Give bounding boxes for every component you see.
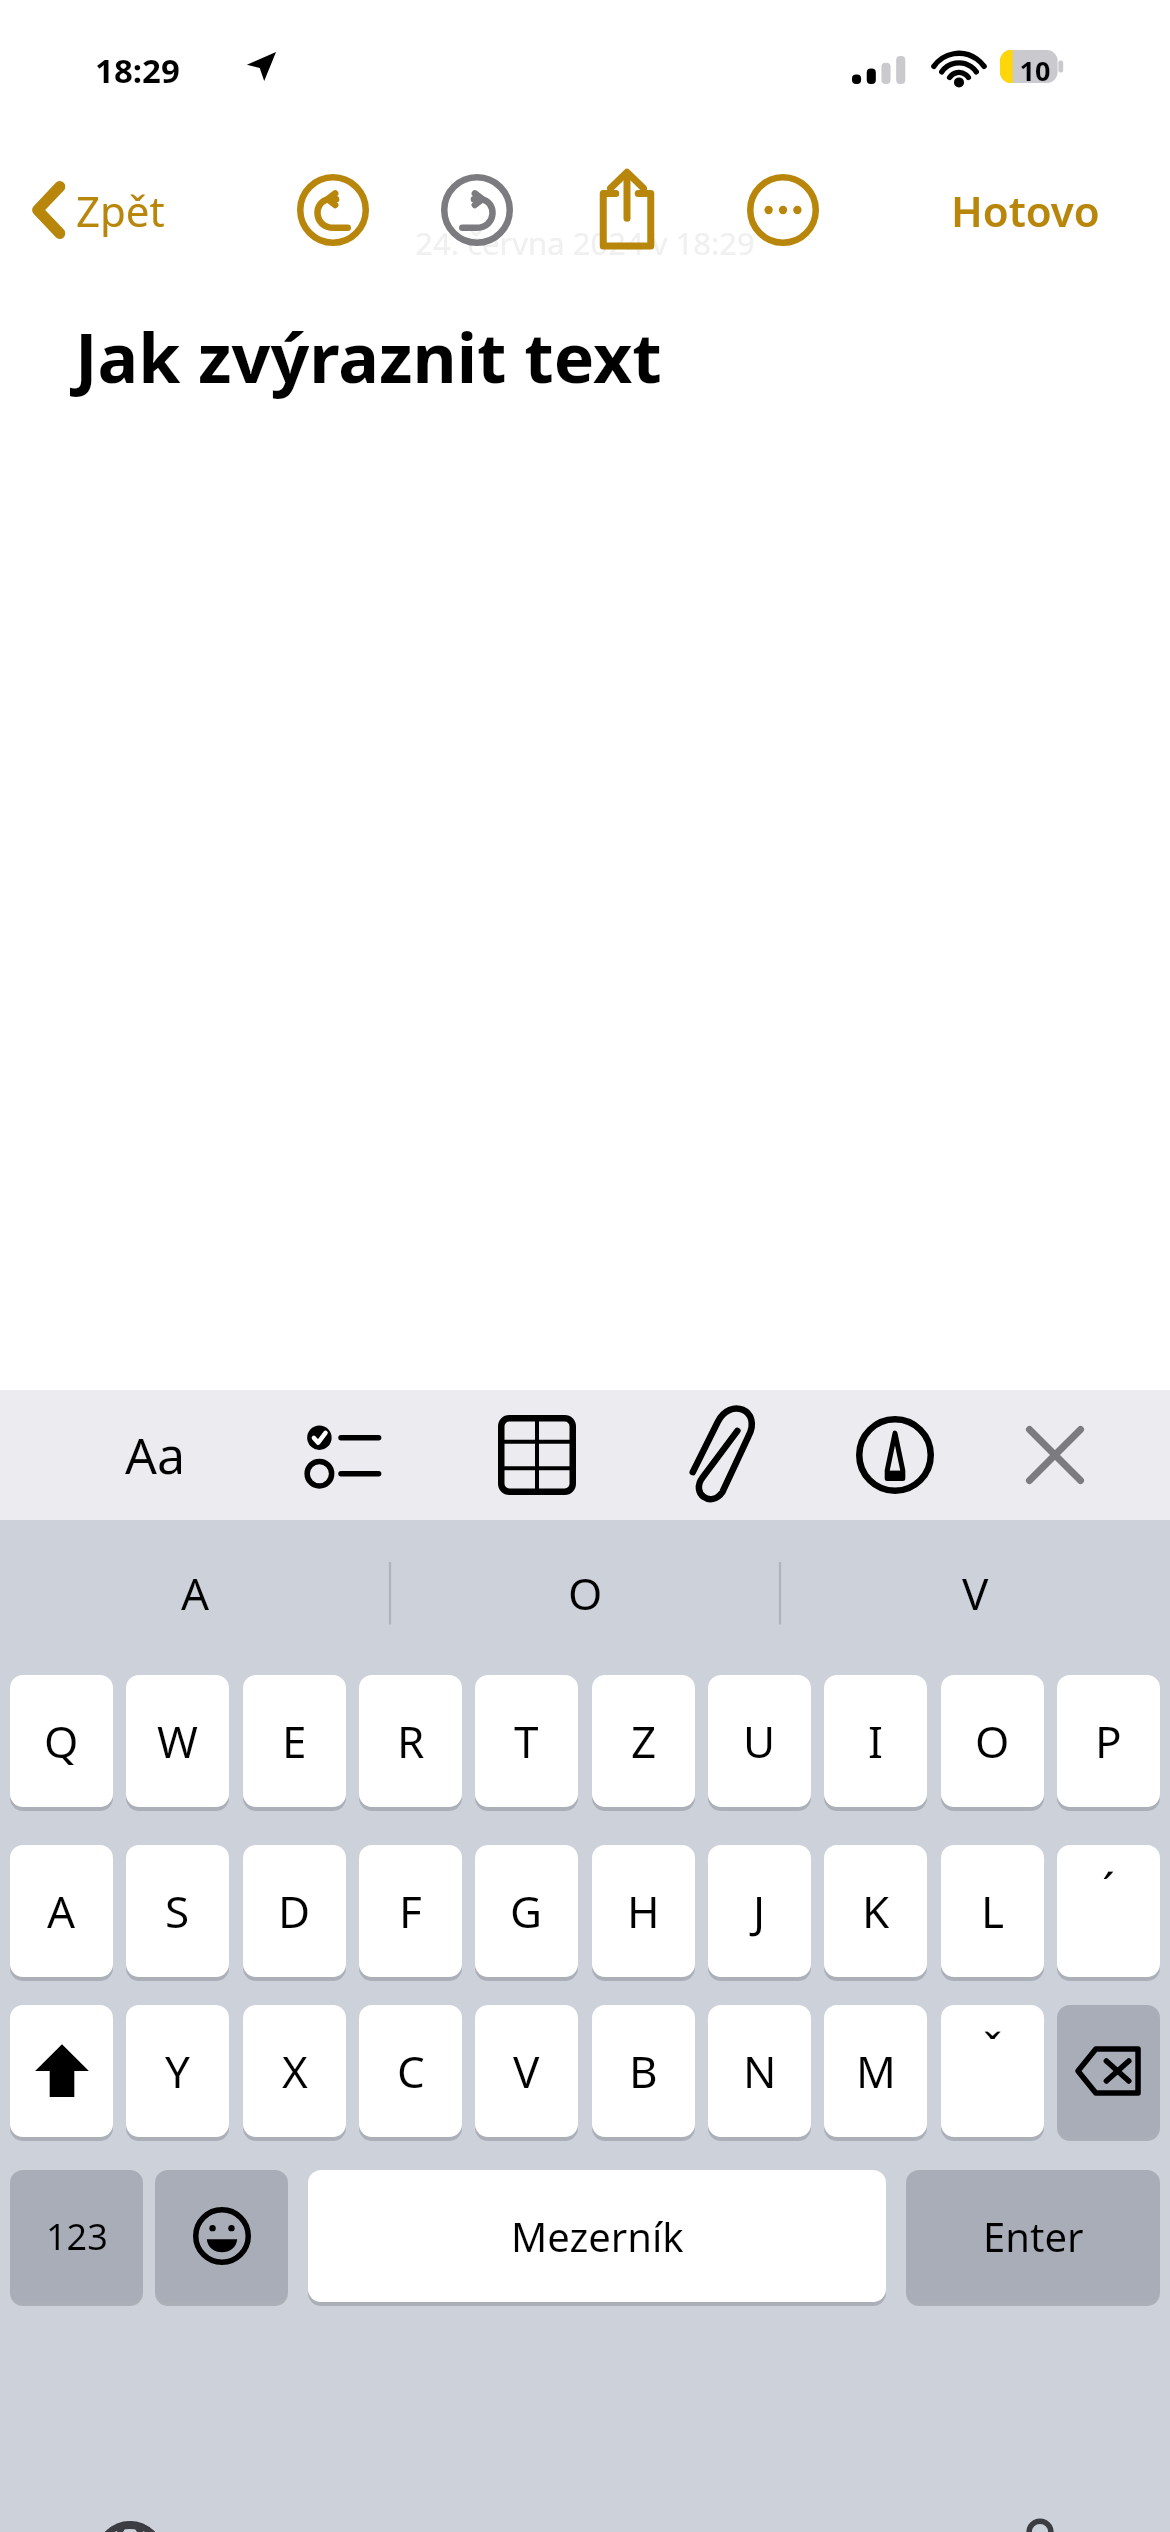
staticText: Z bbox=[631, 1711, 657, 1771]
button[interactable]: E bbox=[243, 1675, 346, 1807]
button[interactable]: M bbox=[824, 2005, 927, 2137]
button[interactable]: Shift bbox=[10, 2005, 113, 2137]
staticText: Zpět bbox=[76, 182, 165, 239]
button[interactable]: B bbox=[592, 2005, 695, 2137]
button[interactable]: T bbox=[475, 1675, 578, 1807]
button[interactable]: F bbox=[359, 1845, 462, 1977]
button[interactable]: I bbox=[824, 1675, 927, 1807]
button[interactable]: V bbox=[475, 2005, 578, 2137]
button[interactable]: C bbox=[359, 2005, 462, 2137]
staticText: Q bbox=[44, 1711, 79, 1771]
button[interactable]: V bbox=[780, 1520, 1170, 1665]
button[interactable]: Zpět (undo) bbox=[278, 155, 388, 265]
staticText: L bbox=[981, 1881, 1005, 1941]
staticText: B bbox=[629, 2041, 658, 2101]
button[interactable]: Kreslení bbox=[825, 1390, 965, 1520]
button[interactable]: G bbox=[475, 1845, 578, 1977]
staticText: F bbox=[399, 1881, 422, 1941]
staticText: A bbox=[181, 1563, 210, 1623]
button[interactable]: 123 bbox=[10, 2170, 143, 2302]
button[interactable]: W bbox=[126, 1675, 229, 1807]
staticText: H bbox=[627, 1881, 660, 1941]
button[interactable]: R bbox=[359, 1675, 462, 1807]
button[interactable]: Tabulka bbox=[467, 1390, 607, 1520]
staticText: Aa bbox=[125, 1421, 185, 1489]
staticText: A bbox=[47, 1881, 76, 1941]
button[interactable]: D bbox=[243, 1845, 346, 1977]
staticText: Y bbox=[165, 2041, 190, 2101]
button[interactable]: S bbox=[126, 1845, 229, 1977]
staticText: U bbox=[743, 1711, 776, 1771]
button[interactable]: X bbox=[243, 2005, 346, 2137]
button[interactable]: O bbox=[941, 1675, 1044, 1807]
button[interactable]: N bbox=[708, 2005, 811, 2137]
staticText: 18:29 bbox=[95, 48, 180, 93]
button[interactable]: Diktovat bbox=[985, 2500, 1095, 2532]
button[interactable]: ˇ bbox=[941, 2005, 1044, 2137]
button[interactable]: A bbox=[10, 1845, 113, 1977]
button[interactable]: Emoji bbox=[155, 2170, 288, 2302]
staticText: R bbox=[397, 1711, 425, 1771]
button[interactable]: Zpět bbox=[20, 155, 179, 265]
staticText: G bbox=[510, 1881, 543, 1941]
button[interactable]: Příloha bbox=[650, 1390, 790, 1520]
button[interactable]: Enter bbox=[906, 2170, 1160, 2302]
button[interactable]: Změnit jazyk bbox=[75, 2500, 185, 2532]
button[interactable]: Znovu (redo) bbox=[422, 155, 532, 265]
button[interactable]: Y bbox=[126, 2005, 229, 2137]
staticText: K bbox=[862, 1881, 890, 1941]
button[interactable]: P bbox=[1057, 1675, 1160, 1807]
staticText: 24. června 2024 v 18:29 bbox=[0, 222, 1170, 264]
staticText: I bbox=[868, 1711, 883, 1771]
staticText: M bbox=[856, 2041, 896, 2101]
button[interactable]: H bbox=[592, 1845, 695, 1977]
staticText: T bbox=[514, 1711, 539, 1771]
staticText: O bbox=[975, 1711, 1010, 1771]
staticText: Hotovo bbox=[951, 182, 1100, 239]
staticText: 10 bbox=[1012, 52, 1058, 89]
button[interactable]: O bbox=[390, 1520, 780, 1665]
button[interactable]: Formát textu bbox=[85, 1390, 225, 1520]
staticText: C bbox=[397, 2041, 425, 2101]
button[interactable]: Zaškrtávací seznam bbox=[275, 1390, 415, 1520]
staticText: Jak zvýraznit text bbox=[75, 310, 662, 403]
button[interactable]: Hotovo bbox=[900, 155, 1150, 265]
staticText: Enter bbox=[983, 2209, 1084, 2263]
staticText: X bbox=[282, 2041, 308, 2101]
button[interactable]: L bbox=[941, 1845, 1044, 1977]
staticText: ´ bbox=[1102, 1858, 1115, 1921]
button[interactable]: K bbox=[824, 1845, 927, 1977]
staticText: W bbox=[157, 1711, 198, 1771]
button[interactable]: Smazat bbox=[1057, 2005, 1160, 2137]
button[interactable]: A bbox=[0, 1520, 390, 1665]
button[interactable]: Mezerník bbox=[308, 2170, 886, 2302]
staticText: J bbox=[753, 1881, 766, 1941]
button[interactable]: U bbox=[708, 1675, 811, 1807]
button[interactable]: Sdílet bbox=[572, 155, 682, 265]
button[interactable]: Z bbox=[592, 1675, 695, 1807]
button[interactable]: J bbox=[708, 1845, 811, 1977]
staticText: ˇ bbox=[983, 2018, 1003, 2081]
button[interactable]: ´ bbox=[1057, 1845, 1160, 1977]
button[interactable]: Q bbox=[10, 1675, 113, 1807]
staticText: V bbox=[962, 1563, 989, 1623]
staticText: P bbox=[1095, 1711, 1122, 1771]
button[interactable]: Zavřít klávesnici bbox=[985, 1390, 1125, 1520]
staticText: V bbox=[513, 2041, 540, 2101]
button[interactable]: Další možnosti bbox=[728, 155, 838, 265]
staticText: E bbox=[282, 1711, 307, 1771]
staticText: S bbox=[165, 1881, 190, 1941]
staticText: Mezerník bbox=[511, 2209, 684, 2263]
staticText: D bbox=[278, 1881, 311, 1941]
staticText: N bbox=[743, 2041, 777, 2101]
staticText: 123 bbox=[46, 2212, 108, 2261]
staticText: O bbox=[568, 1563, 603, 1623]
